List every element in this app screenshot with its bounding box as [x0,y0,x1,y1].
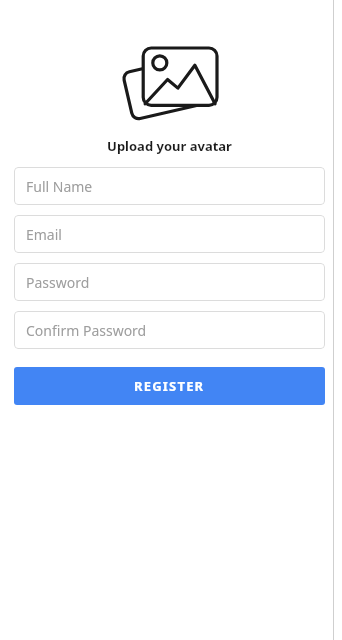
button[interactable]: Confirm Password [14,311,325,349]
staticText: REGISTER [134,377,205,395]
staticText: Upload your avatar [107,137,232,155]
staticText: Password [26,273,90,292]
button[interactable]: Password [14,263,325,301]
button[interactable]: Email [14,215,325,253]
staticText: Email [26,225,62,244]
staticText: Full Name [26,177,93,196]
button[interactable]: Upload your avatar [123,48,217,126]
button[interactable]: REGISTER [14,367,325,405]
button[interactable]: Full Name [14,167,325,205]
staticText: Confirm Password [26,321,147,340]
